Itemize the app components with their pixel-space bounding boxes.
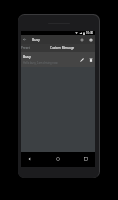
staticText: Custom Message [50,46,75,50]
staticText: Preset [21,46,30,50]
button[interactable]: Preset [21,44,30,52]
staticText: Hello busy, I am driving now [23,61,58,65]
button[interactable]: Add [77,35,86,44]
staticText: 10:30 [86,31,94,35]
button[interactable]: Delete [86,52,95,67]
button[interactable]: Custom Message [30,44,95,52]
button[interactable]: Navigate up [21,35,28,44]
staticText: Busy [23,54,31,59]
button[interactable]: Settings [86,35,95,44]
button[interactable]: Back [25,154,35,164]
button[interactable]: Home [53,154,63,164]
button[interactable]: Busy [21,52,95,67]
button[interactable]: Recents [81,154,91,164]
staticText: Busy [32,37,77,42]
button[interactable]: Edit [77,52,86,67]
